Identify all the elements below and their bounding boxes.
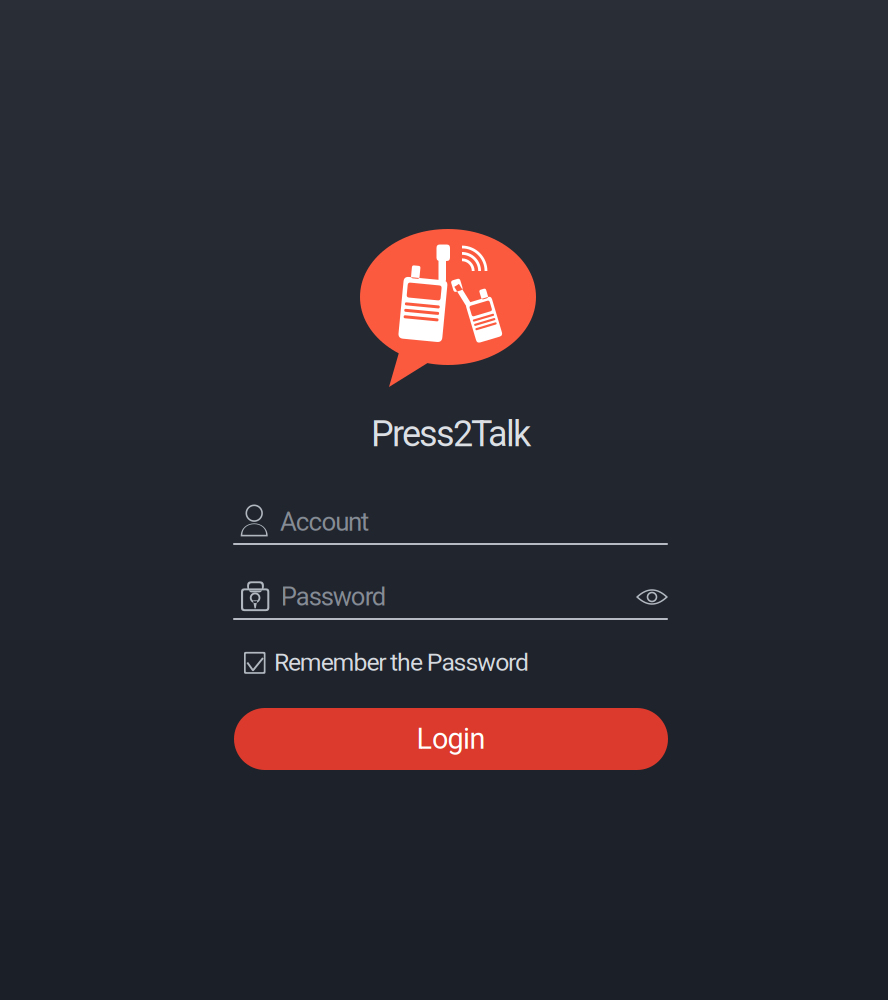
staticText: Press2Talk <box>371 413 531 455</box>
staticText: Password <box>281 582 386 612</box>
button[interactable]: Login <box>234 708 668 770</box>
button[interactable]: Remember the Password <box>243 651 520 674</box>
staticText: Login <box>416 722 485 756</box>
staticText: Remember the Password <box>274 648 529 677</box>
staticText: Account <box>280 507 369 537</box>
button[interactable]: Show password <box>627 575 677 619</box>
